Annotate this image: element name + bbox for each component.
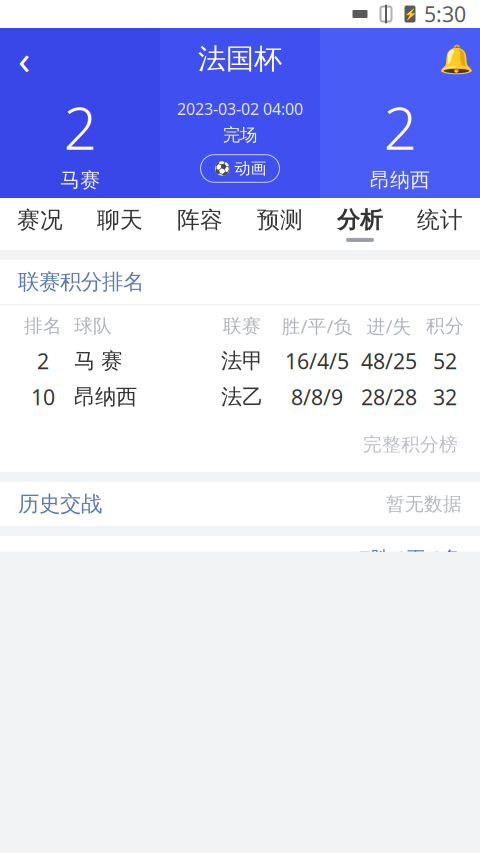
staticText: 预测 (257, 206, 303, 234)
staticText: 完场 (223, 124, 257, 146)
staticText: 进/失 (366, 314, 411, 338)
staticText: 2 (63, 88, 96, 166)
staticText: 16/4/5 (285, 347, 349, 375)
staticText: 2 (383, 88, 416, 166)
button[interactable]: 阵容 (160, 198, 240, 250)
button[interactable]: 分析 (320, 198, 400, 250)
staticText: 昂纳西 (370, 168, 430, 192)
staticText: ⚽ (213, 161, 230, 176)
staticText: 5:30 (424, 0, 466, 28)
staticText: 2023-03-02 04:00 (177, 98, 303, 119)
staticText: ‹ (18, 32, 30, 85)
staticText: 统计 (417, 206, 463, 234)
staticText: 法国杯 (198, 42, 282, 76)
staticText: 马 赛 (74, 348, 122, 374)
staticText: 赛况 (17, 206, 63, 234)
staticText: 球队 (74, 314, 112, 337)
staticText: 48/25 (361, 347, 417, 375)
staticText: 聊天 (97, 206, 143, 234)
staticText: 积分 (426, 314, 464, 337)
button[interactable]: 预测 (240, 198, 320, 250)
staticText: 联赛 (223, 314, 261, 337)
button[interactable]: Notifications (432, 37, 480, 81)
staticText: 联赛积分排名 (18, 269, 144, 295)
staticText: 🔔 (438, 43, 473, 75)
staticText: 32 (433, 383, 457, 411)
staticText: 法甲 (221, 348, 263, 374)
staticText: 昂纳西 (74, 384, 137, 410)
staticText: 马赛 (60, 168, 100, 192)
button[interactable]: Back (0, 37, 48, 81)
staticText: 完整积分榜 (363, 433, 458, 456)
staticText: 10 (31, 383, 55, 411)
button[interactable]: 赛况 (0, 198, 80, 250)
staticText: 28/28 (361, 383, 417, 411)
staticText: 8/8/9 (291, 383, 343, 411)
staticText: 2 (37, 347, 49, 375)
staticText: 暂无数据 (386, 492, 462, 515)
staticText: 52 (433, 347, 457, 375)
staticText: 胜/平/负 (281, 314, 352, 338)
button[interactable]: 完整积分榜 (359, 427, 462, 462)
button[interactable]: ⚽ (200, 155, 279, 182)
staticText: 法乙 (221, 384, 263, 410)
button[interactable]: 统计 (400, 198, 480, 250)
staticText: 动画 (234, 159, 266, 178)
staticText: ⚡ (403, 8, 416, 20)
staticText: 分析 (337, 206, 383, 234)
button[interactable]: 聊天 (80, 198, 160, 250)
staticText: 历史交战 (18, 491, 102, 517)
staticText: 7胜 1平 2负 (359, 545, 462, 571)
staticText: 排名 (24, 314, 62, 337)
staticText: 阵容 (177, 206, 223, 234)
